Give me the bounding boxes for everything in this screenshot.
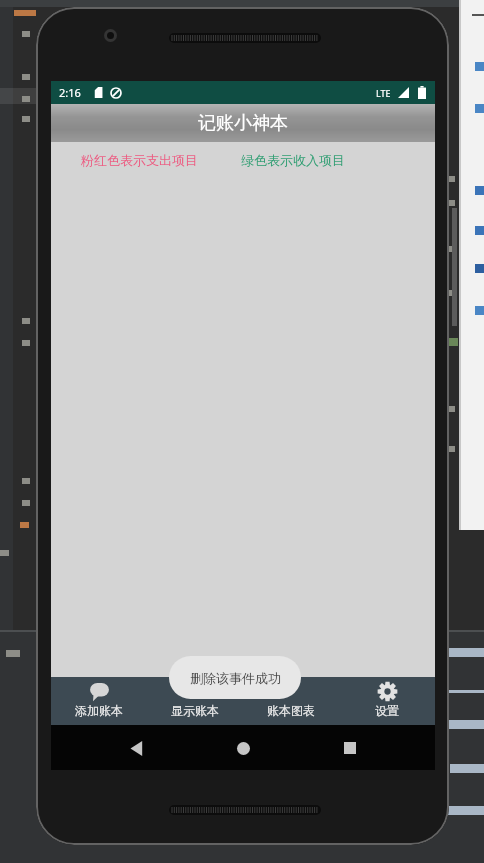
staticText: 2:16	[59, 85, 81, 100]
staticText: 绿色表示收入项目	[241, 152, 345, 168]
button[interactable]: 设置	[339, 677, 435, 725]
button[interactable]: 显示账本	[147, 677, 243, 725]
button[interactable]: Home	[226, 731, 260, 765]
staticText: 添加账本	[75, 703, 123, 718]
staticText: 记账小神本	[198, 112, 288, 135]
staticText: 粉红色表示支出项目	[81, 152, 198, 168]
button[interactable]: Back	[119, 731, 153, 765]
staticText: LTE	[376, 87, 391, 99]
button[interactable]: 添加账本	[51, 677, 147, 725]
button[interactable]: 账本图表	[243, 677, 339, 725]
button[interactable]: Recents	[333, 731, 367, 765]
staticText: 删除该事件成功	[190, 670, 281, 686]
staticText: 显示账本	[171, 703, 219, 718]
staticText: 账本图表	[267, 703, 315, 718]
staticText: 设置	[375, 703, 399, 718]
